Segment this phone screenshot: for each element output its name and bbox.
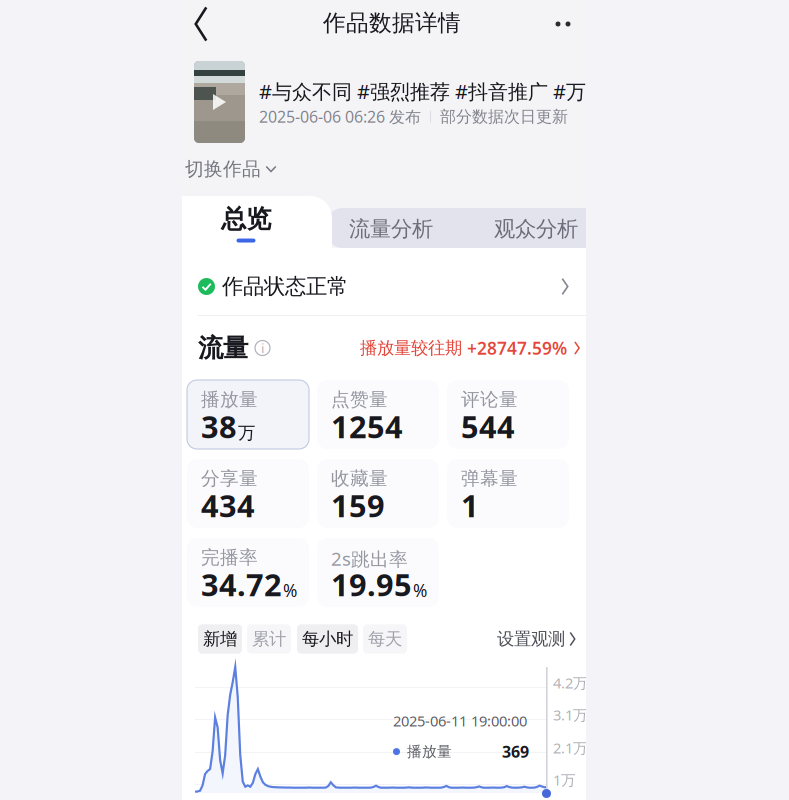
staticText: 34.72	[201, 564, 282, 605]
staticText: 播放量	[201, 388, 258, 411]
staticText: 3.1万	[553, 705, 588, 724]
staticText: 评论量	[461, 388, 518, 411]
staticText: #与众不同 #强烈推荐 #抖音推广 #万能的抖…	[259, 78, 662, 105]
button[interactable]: 作品状态正常	[182, 248, 586, 315]
staticText: 2.1万	[553, 738, 588, 757]
button[interactable]: 总览	[182, 194, 310, 248]
button[interactable]: 设置观测	[497, 628, 580, 650]
staticText: 1254	[331, 406, 403, 447]
staticText: 点赞量	[331, 388, 388, 411]
staticText: 1	[461, 485, 479, 526]
button[interactable]: 观众分析	[476, 208, 596, 250]
button[interactable]: 播放量较往期	[360, 336, 584, 359]
staticText: 完播率	[201, 546, 258, 569]
staticText: 4.2万	[553, 673, 588, 692]
staticText: 新增	[203, 628, 237, 650]
staticText: 2025-06-06 06:26 发布	[259, 106, 421, 127]
button[interactable]: 累计	[247, 624, 291, 654]
staticText: 作品状态正常	[222, 273, 348, 300]
staticText: i	[261, 339, 264, 357]
staticText: 播放量	[407, 743, 452, 761]
staticText: 万	[238, 422, 255, 444]
staticText: 观众分析	[494, 216, 578, 242]
staticText: 作品数据详情	[323, 9, 461, 37]
staticText: 每小时	[302, 628, 353, 650]
button[interactable]: 每天	[363, 624, 407, 654]
staticText: 播放量较往期	[360, 337, 467, 359]
staticText: 每天	[368, 628, 402, 650]
staticText: 19.95	[331, 564, 412, 605]
button[interactable]: 新增	[198, 624, 242, 654]
staticText: 1万	[553, 770, 576, 789]
staticText: 流量分析	[349, 216, 433, 242]
staticText: 切换作品	[185, 157, 261, 180]
staticText: 369	[502, 741, 529, 762]
staticText: 弹幕量	[461, 467, 518, 490]
staticText: 部分数据次日更新	[440, 107, 568, 126]
button[interactable]: 流量分析	[331, 208, 451, 250]
staticText: 38	[201, 406, 237, 447]
staticText: %	[283, 579, 297, 602]
staticText: +28747.59%	[467, 336, 567, 359]
button[interactable]: 每小时	[297, 624, 358, 654]
button[interactable]: 切换作品	[183, 153, 280, 184]
staticText: 分享量	[201, 467, 258, 490]
button[interactable]: Back	[182, 1, 220, 47]
staticText: 总览	[221, 203, 271, 234]
button[interactable]: More options	[540, 1, 586, 47]
staticText: 544	[461, 406, 515, 447]
staticText: 434	[201, 485, 255, 526]
staticText: 累计	[252, 628, 286, 650]
staticText: 设置观测	[497, 628, 565, 650]
staticText: 收藏量	[331, 467, 388, 490]
staticText: 2s跳出率	[331, 546, 408, 571]
staticText: %	[413, 579, 427, 602]
staticText: 2025-06-11 19:00:00	[393, 711, 527, 730]
staticText: 流量	[198, 332, 248, 363]
staticText: 159	[331, 485, 385, 526]
